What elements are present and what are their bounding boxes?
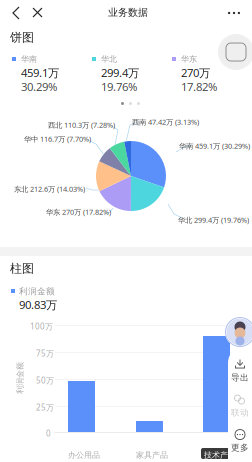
staticText: 17.82% (181, 79, 217, 94)
staticText: 办公用品 (68, 450, 100, 460)
staticText: 299.4万 (101, 65, 139, 80)
staticText: 华南 459.1万 (30.29%) (179, 141, 250, 151)
button[interactable]: Close (27, 2, 49, 24)
staticText: 东北 212.6万 (14.03%) (14, 184, 85, 194)
staticText: 0 (46, 428, 51, 439)
button[interactable]: 更多 (229, 430, 251, 452)
staticText: 柱图 (10, 261, 34, 276)
staticText: 业务数据 (108, 6, 148, 19)
staticText: 75万 (36, 348, 54, 359)
staticText: 华东 270万 (17.82%) (46, 207, 111, 217)
staticText: 利润金额 (19, 286, 55, 297)
staticText: 华北 (101, 54, 117, 64)
staticText: 饼图 (10, 30, 34, 45)
staticText: 导出 (231, 372, 249, 383)
staticText: 25万 (36, 402, 54, 413)
staticText: 家具产品 (136, 450, 168, 460)
button[interactable]: 联动 (229, 395, 251, 417)
staticText: 技术产 (204, 450, 228, 460)
staticText: 华中 116.7万 (7.70%) (24, 134, 91, 144)
staticText: 华南 (21, 54, 37, 64)
staticText: 西北 110.3万 (7.28%) (48, 120, 115, 130)
staticText: 459.1万 (21, 65, 59, 80)
staticText: 19.76% (101, 79, 137, 94)
button[interactable]: Chart layout (218, 34, 252, 70)
button[interactable]: 导出 (229, 360, 251, 382)
staticText: 利润金额 (4, 373, 36, 383)
staticText: 50万 (36, 375, 54, 386)
staticText: 华东 (181, 54, 197, 64)
button[interactable]: Back (4, 2, 26, 24)
button[interactable]: Profile (225, 317, 252, 347)
staticText: 华北 299.4万 (19.76%) (178, 215, 249, 225)
staticText: 90.83万 (19, 297, 57, 312)
staticText: 270万 (181, 65, 210, 80)
staticText: 联动 (231, 407, 249, 418)
staticText: 西南 47.42万 (3.13%) (132, 117, 199, 127)
staticText: 更多 (231, 442, 249, 453)
staticText: 30.29% (21, 79, 57, 94)
button[interactable]: More options (222, 2, 246, 24)
staticText: 100万 (30, 321, 53, 332)
